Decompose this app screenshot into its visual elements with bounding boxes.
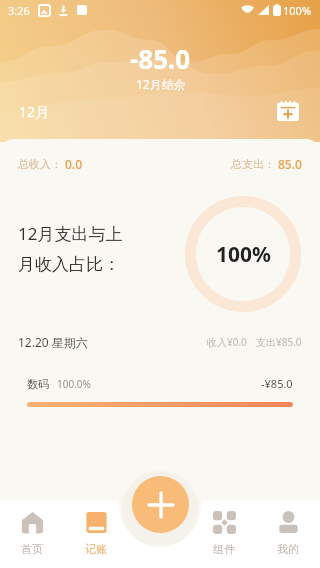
staticText: 记账 bbox=[85, 542, 107, 556]
staticText: 数码 bbox=[27, 377, 49, 391]
staticText: 我的 bbox=[277, 542, 299, 556]
button[interactable]: 首页 bbox=[0, 468, 64, 568]
staticText: 100% bbox=[216, 240, 271, 269]
staticText: 100.0% bbox=[57, 377, 91, 391]
button[interactable]: 我的 bbox=[256, 468, 320, 568]
button[interactable]: Add transaction bbox=[132, 476, 189, 533]
staticText: 支出¥85.0 bbox=[256, 335, 302, 349]
staticText: 85.0 bbox=[278, 156, 302, 172]
button[interactable]: 数码 bbox=[27, 376, 293, 407]
staticText: -¥85.0 bbox=[261, 376, 293, 391]
staticText: 12月结余 bbox=[136, 76, 186, 92]
staticText: 3:26 bbox=[8, 3, 30, 18]
staticText: 组件 bbox=[213, 542, 235, 556]
button[interactable]: 记账 bbox=[64, 468, 128, 568]
staticText: 总支出： bbox=[231, 157, 275, 171]
button[interactable]: Add record by date bbox=[275, 98, 301, 124]
staticText: 12.20 星期六 bbox=[18, 334, 88, 350]
staticText: 12月支出与上 月收入占比： bbox=[18, 222, 123, 275]
staticText: 收入¥0.0 bbox=[207, 335, 247, 349]
staticText: 首页 bbox=[21, 542, 43, 556]
button[interactable]: 组件 bbox=[192, 468, 256, 568]
staticText: 100% bbox=[283, 3, 312, 18]
staticText: -85.0 bbox=[130, 41, 191, 76]
staticText: 12月 bbox=[19, 102, 50, 121]
staticText: 0.0 bbox=[65, 156, 82, 172]
staticText: 总收入： bbox=[18, 157, 62, 171]
